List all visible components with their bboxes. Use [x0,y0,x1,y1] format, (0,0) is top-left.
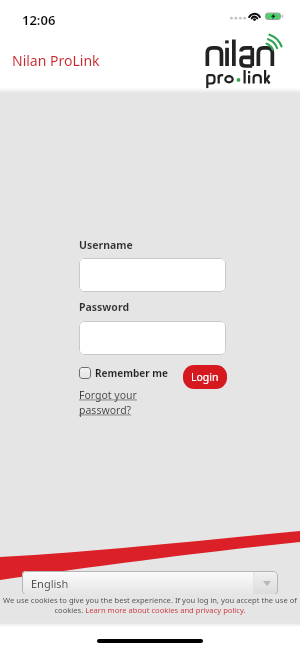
staticText: password? [79,403,132,417]
button[interactable]: Remember me [79,366,169,380]
button[interactable]: Login [183,365,227,389]
staticText: Username [79,238,133,252]
button[interactable]: Forgot your [79,388,137,417]
staticText: Login [191,370,219,384]
button[interactable]: cookies. Learn more about cookies and pr… [54,605,246,615]
button[interactable]: English [22,571,278,595]
button[interactable]: Nilan ProLink [12,51,100,70]
staticText: We use cookies to give you the best expe… [3,595,297,605]
staticText: 12:06 [22,11,56,29]
staticText: Forgot your [79,388,137,402]
staticText: English [31,576,69,591]
staticText: Password [79,300,130,314]
staticText: Remember me [95,366,169,380]
button[interactable] [79,321,226,355]
button[interactable] [79,258,226,292]
